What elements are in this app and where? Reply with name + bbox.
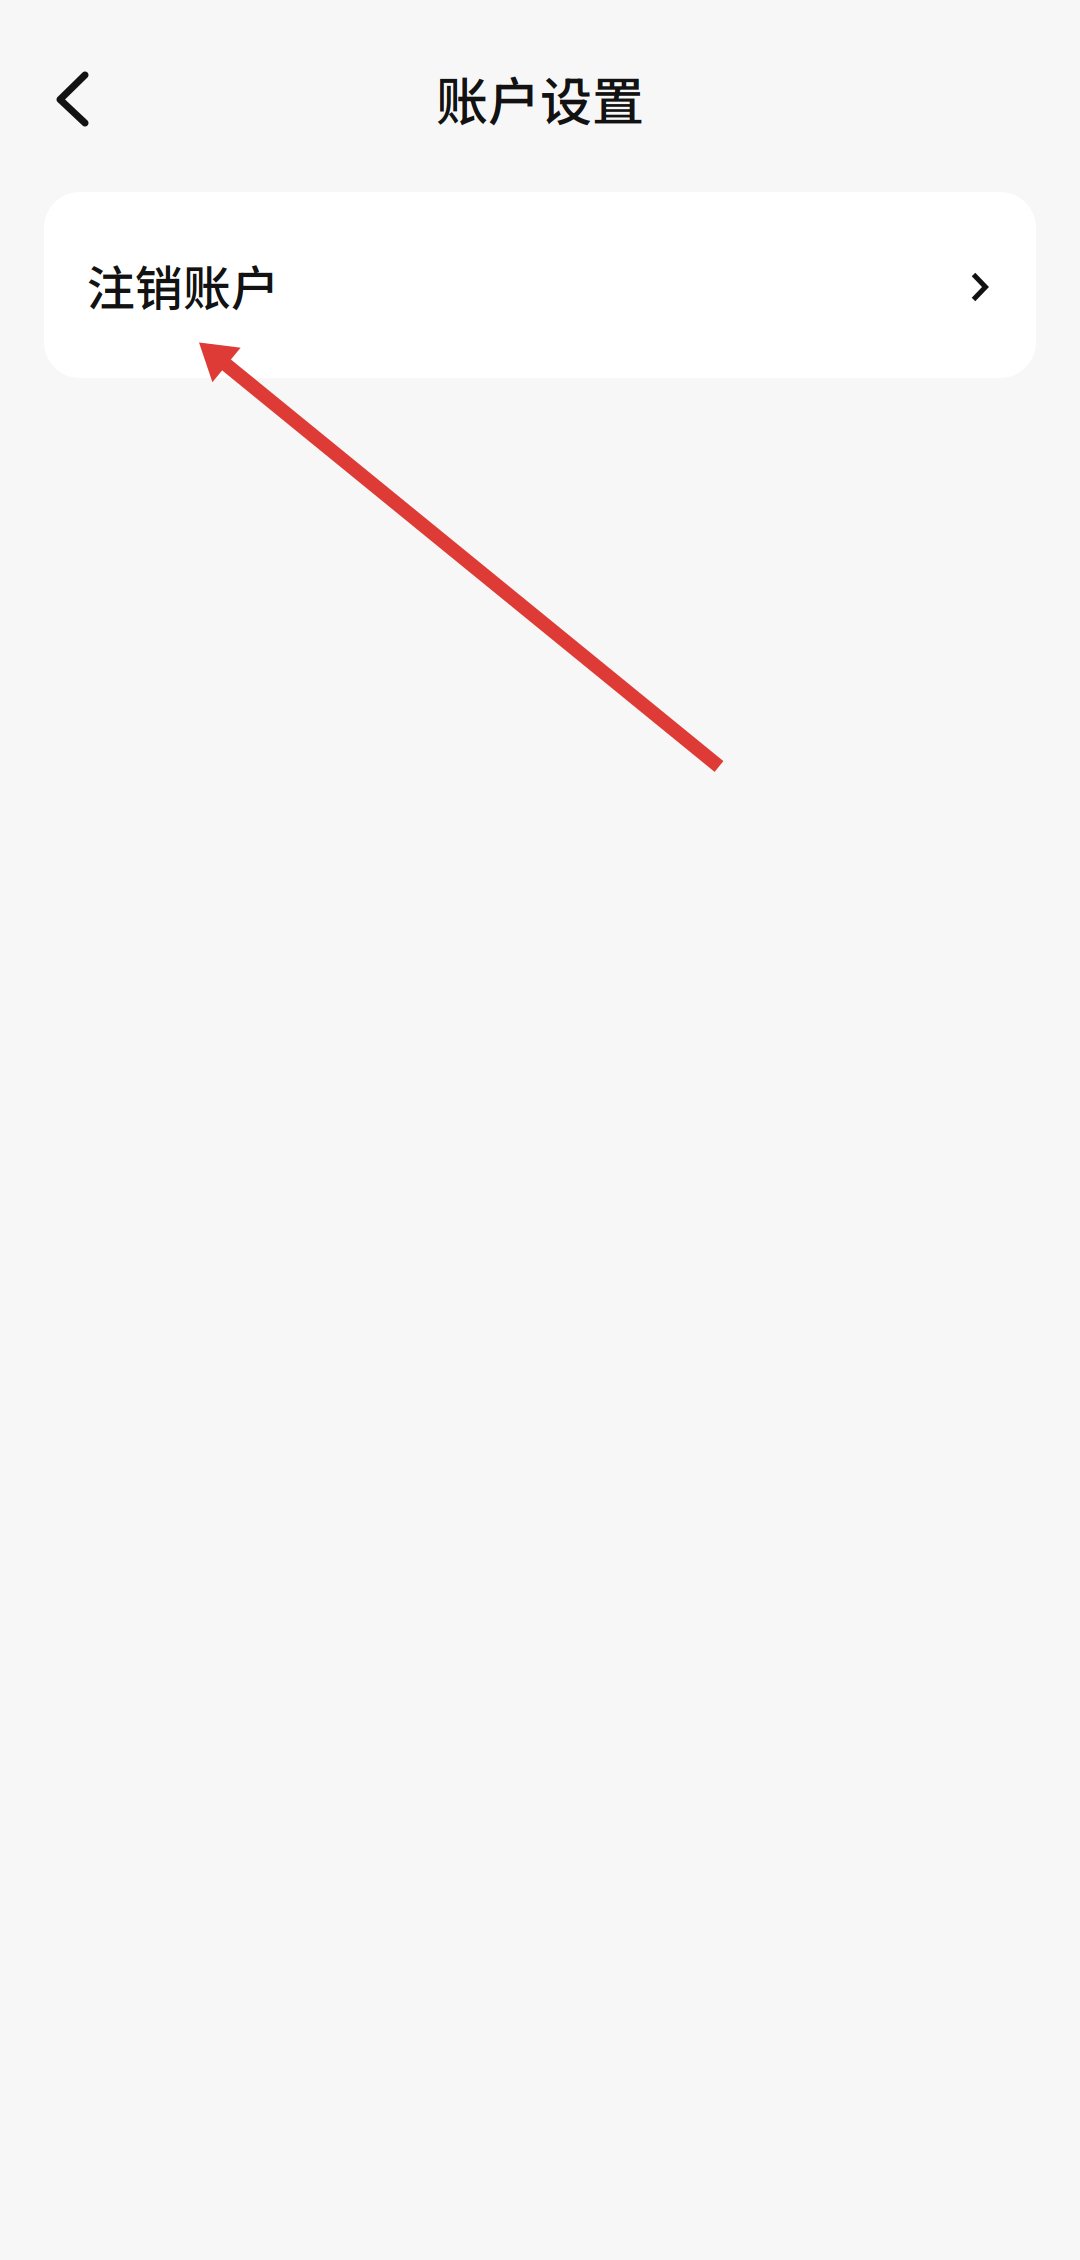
staticText: 账户设置 xyxy=(436,60,644,136)
button[interactable]: Back xyxy=(18,44,126,152)
button[interactable]: 注销账户 xyxy=(44,192,1036,378)
staticText: 注销账户 xyxy=(87,250,279,320)
